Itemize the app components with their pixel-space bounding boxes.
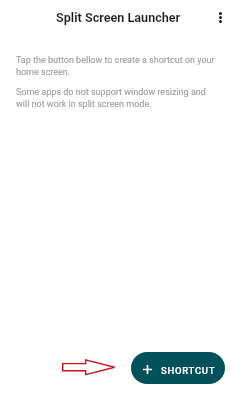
- staticText: Tap the button bellow to create a shortc…: [16, 55, 220, 77]
- button[interactable]: SHORTCUT: [131, 352, 225, 384]
- staticText: Split Screen Launcher: [56, 10, 181, 25]
- button[interactable]: More options: [208, 5, 232, 29]
- staticText: Some apps do not support window resizing…: [16, 87, 220, 109]
- staticText: SHORTCUT: [161, 365, 216, 376]
